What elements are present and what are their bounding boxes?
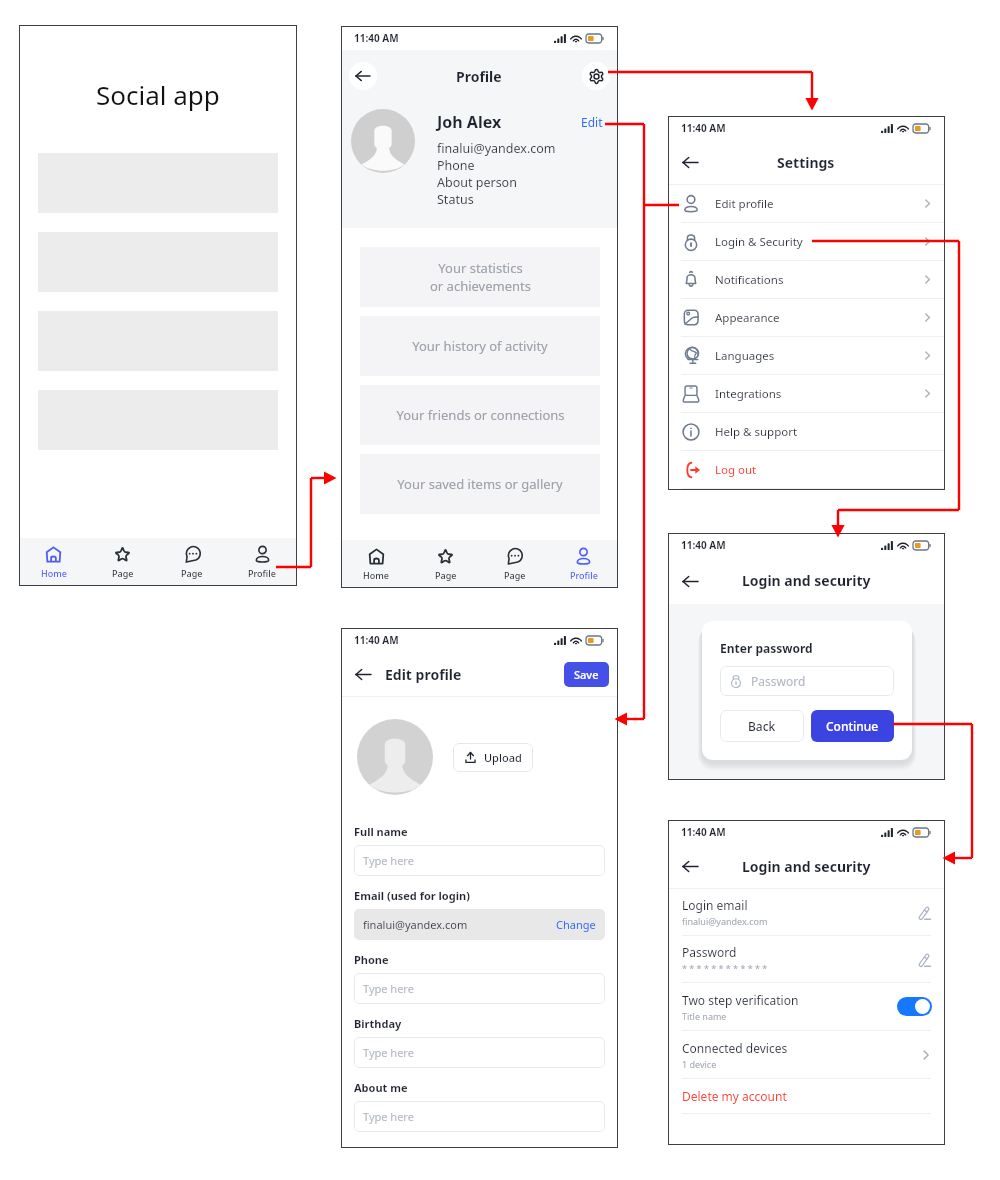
button[interactable]: Type here xyxy=(354,845,605,876)
other: Edit xyxy=(916,904,932,920)
staticText: 11:40 AM xyxy=(681,825,726,839)
staticText: Type here xyxy=(363,981,414,996)
button[interactable]: Home xyxy=(341,540,411,588)
staticText: Edit profile xyxy=(385,665,462,684)
staticText: Password xyxy=(751,673,806,689)
button[interactable]: Password xyxy=(682,936,932,982)
staticText: Enter password xyxy=(720,640,813,656)
button[interactable]: Profile xyxy=(227,538,297,586)
other: Edit xyxy=(916,951,932,967)
staticText: Integrations xyxy=(715,386,782,402)
button[interactable]: Log out xyxy=(682,451,933,488)
staticText: Notifications xyxy=(715,272,784,288)
staticText: finalui@yandex.com xyxy=(682,915,768,927)
staticText: Your statistics or achievements xyxy=(430,259,531,295)
button[interactable]: Page xyxy=(88,538,157,586)
button[interactable]: Profile xyxy=(549,540,618,588)
button[interactable]: Appearance xyxy=(682,299,933,336)
button[interactable]: Settings xyxy=(582,62,610,90)
button[interactable]: Home xyxy=(19,538,88,586)
button[interactable]: Password xyxy=(720,666,894,696)
button[interactable]: Your saved items or gallery xyxy=(360,454,600,514)
staticText: Two step verification xyxy=(682,992,799,1008)
button[interactable]: Help & support xyxy=(682,413,933,450)
button[interactable]: Back xyxy=(354,665,372,683)
staticText: About person xyxy=(437,174,517,191)
staticText: Birthday xyxy=(354,1016,402,1031)
button[interactable]: Integrations xyxy=(682,375,933,412)
staticText: Help & support xyxy=(715,424,798,440)
button[interactable]: Notifications xyxy=(682,261,933,298)
staticText: Page xyxy=(181,567,203,579)
button[interactable]: Type here xyxy=(354,1101,605,1132)
button[interactable]: Back xyxy=(720,710,804,742)
staticText: 11:40 AM xyxy=(681,121,726,135)
staticText: About me xyxy=(354,1080,408,1095)
button[interactable]: Your statistics or achievements xyxy=(360,247,600,307)
button[interactable]: Languages xyxy=(682,337,933,374)
staticText: Your history of activity xyxy=(412,337,548,355)
staticText: Login and security xyxy=(742,571,871,590)
staticText: Full name xyxy=(354,824,408,839)
staticText: 11:40 AM xyxy=(354,633,399,647)
staticText: Social app xyxy=(96,77,220,112)
button[interactable]: Toggle two step verification xyxy=(897,997,932,1016)
staticText: Profile xyxy=(570,569,598,581)
staticText: Status xyxy=(437,191,474,208)
staticText: Edit profile xyxy=(715,196,774,212)
staticText: Change xyxy=(556,917,596,932)
staticText: Your friends or connections xyxy=(396,406,565,424)
button[interactable]: Save xyxy=(564,662,609,687)
staticText: Appearance xyxy=(715,310,780,326)
staticText: Home xyxy=(41,567,67,579)
button[interactable]: Upload xyxy=(453,743,533,772)
button[interactable]: Edit xyxy=(581,114,603,130)
button[interactable]: Your friends or connections xyxy=(360,385,600,445)
button[interactable]: Delete my account xyxy=(682,1079,931,1113)
staticText: Continue xyxy=(826,718,879,734)
staticText: Page xyxy=(435,569,457,581)
button[interactable]: Type here xyxy=(354,973,605,1004)
button[interactable]: Type here xyxy=(354,1037,605,1068)
staticText: Profile xyxy=(456,67,502,86)
button[interactable]: Edit profile xyxy=(682,185,933,222)
staticText: Joh Alex xyxy=(437,111,502,133)
button[interactable]: Continue xyxy=(811,710,894,742)
staticText: Profile xyxy=(248,567,276,579)
staticText: finalui@yandex.com xyxy=(363,917,468,932)
staticText: Title name xyxy=(682,1010,727,1022)
button[interactable]: Login email xyxy=(682,889,932,935)
button[interactable]: finalui@yandex.com xyxy=(354,909,605,940)
staticText: finalui@yandex.com xyxy=(437,140,556,157)
button[interactable]: Connected devices xyxy=(682,1031,932,1078)
staticText: Phone xyxy=(437,157,475,174)
button[interactable]: Page xyxy=(411,540,480,588)
staticText: Languages xyxy=(715,348,775,364)
staticText: Password xyxy=(682,944,737,960)
button[interactable]: Back xyxy=(681,153,699,171)
button[interactable]: Back xyxy=(681,572,699,590)
button[interactable]: Login & Security xyxy=(682,223,933,260)
staticText: Type here xyxy=(363,1109,414,1124)
staticText: Email (used for login) xyxy=(354,888,470,903)
button[interactable]: Back xyxy=(349,62,377,90)
staticText: 11:40 AM xyxy=(681,538,726,552)
staticText: 1 device xyxy=(682,1058,717,1070)
staticText: Login and security xyxy=(742,857,871,876)
button[interactable]: Page xyxy=(157,538,227,586)
button[interactable]: Back xyxy=(681,857,699,875)
staticText: Login email xyxy=(682,897,748,913)
staticText: Back xyxy=(748,718,776,734)
button[interactable]: Your history of activity xyxy=(360,316,600,376)
staticText: Page xyxy=(504,569,526,581)
staticText: Type here xyxy=(363,853,414,868)
button[interactable]: Two step verification xyxy=(682,983,932,1030)
staticText: Page xyxy=(112,567,134,579)
button[interactable]: Page xyxy=(480,540,549,588)
staticText: Phone xyxy=(354,952,389,967)
staticText: Login & Security xyxy=(715,234,803,250)
